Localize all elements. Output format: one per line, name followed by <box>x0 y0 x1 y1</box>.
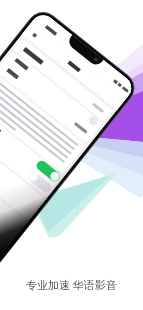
staticText: 专业加速 华语影音 <box>26 277 117 292</box>
